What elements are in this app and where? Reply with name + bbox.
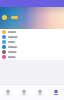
button[interactable] — [0, 49, 64, 54]
button[interactable] — [0, 39, 64, 44]
button[interactable]: Tab — [32, 85, 48, 100]
button[interactable] — [0, 29, 64, 34]
button[interactable]: Tab — [48, 85, 64, 100]
button[interactable]: Tab — [0, 85, 16, 100]
button[interactable] — [0, 34, 64, 39]
button[interactable] — [0, 54, 64, 59]
button[interactable] — [0, 44, 64, 49]
button[interactable]: Tab — [16, 85, 32, 100]
